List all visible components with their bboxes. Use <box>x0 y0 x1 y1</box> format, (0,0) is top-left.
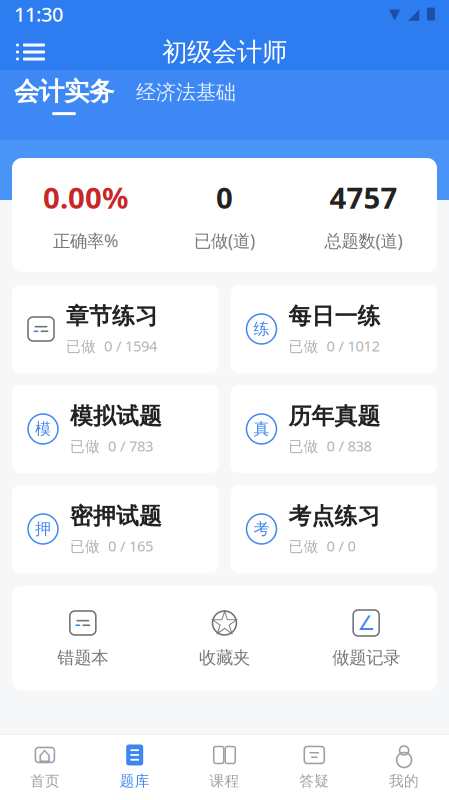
staticText: 模拟试题 <box>70 402 162 430</box>
button[interactable]: 题库 <box>90 743 180 790</box>
staticText: 考 <box>253 519 269 539</box>
staticText: 答疑 <box>299 772 329 790</box>
staticText: 真 <box>253 419 269 439</box>
button[interactable]: 课程 <box>180 743 269 790</box>
staticText: 练 <box>253 319 269 339</box>
button[interactable]: Menu <box>8 35 53 68</box>
staticText: 考点练习 <box>288 502 380 530</box>
staticText: 总题数(道) <box>324 229 402 252</box>
staticText: 11:30 <box>14 1 63 27</box>
staticText: 0.00% <box>43 178 128 217</box>
button[interactable]: 押 <box>12 485 218 573</box>
staticText: ∠ <box>357 612 375 634</box>
staticText: 已做 0 / 1012 <box>288 336 379 356</box>
staticText: ◢ <box>408 6 419 22</box>
staticText: 初级会计师 <box>162 36 287 67</box>
button[interactable]: 我的 <box>359 743 449 790</box>
staticText: 已做 0 / 783 <box>70 436 153 456</box>
staticText: 正确率% <box>53 229 118 252</box>
button[interactable]: 练 <box>230 285 437 373</box>
button[interactable]: 真 <box>230 385 437 473</box>
staticText: 已做 0 / 1594 <box>66 336 157 356</box>
staticText: 会计实务 <box>14 76 114 107</box>
staticText: ☆ <box>209 603 240 643</box>
button[interactable]: ∠ <box>295 608 437 668</box>
button[interactable]: ⌂ <box>0 743 90 790</box>
staticText: 收藏夹 <box>199 647 250 668</box>
staticText: 0 <box>216 178 233 217</box>
staticText: 做题记录 <box>332 647 400 668</box>
button[interactable]: ★ <box>154 608 295 668</box>
staticText: 已做 0 / 838 <box>288 436 371 456</box>
button[interactable]: 答疑 <box>269 743 359 790</box>
staticText: 课程 <box>209 772 239 790</box>
button[interactable]: 章节练习 <box>12 285 218 373</box>
staticText: 模 <box>35 419 51 439</box>
staticText: 历年真题 <box>288 402 380 430</box>
button[interactable]: 考 <box>230 485 437 573</box>
staticText: 每日一练 <box>288 302 380 330</box>
staticText: ★ <box>214 610 234 636</box>
staticText: 题库 <box>120 772 150 790</box>
staticText: 章节练习 <box>66 302 158 330</box>
staticText: 押 <box>35 519 51 539</box>
staticText: 我的 <box>389 772 419 790</box>
staticText: ▼ <box>389 6 400 22</box>
staticText: 4757 <box>329 178 397 217</box>
button[interactable]: 经济法基础 <box>136 76 236 113</box>
button[interactable]: 错题本 <box>12 608 154 668</box>
staticText: ⌂ <box>38 743 52 767</box>
staticText: 已做(道) <box>194 229 255 252</box>
staticText: 已做 0 / 165 <box>70 536 153 556</box>
button[interactable]: 模 <box>12 385 218 473</box>
staticText: 已做 0 / 0 <box>288 536 355 556</box>
staticText: 首页 <box>30 772 60 790</box>
button[interactable]: 会计实务 <box>14 76 114 115</box>
staticText: 密押试题 <box>70 502 162 530</box>
staticText: 错题本 <box>57 647 108 668</box>
staticText: 经济法基础 <box>136 80 236 105</box>
